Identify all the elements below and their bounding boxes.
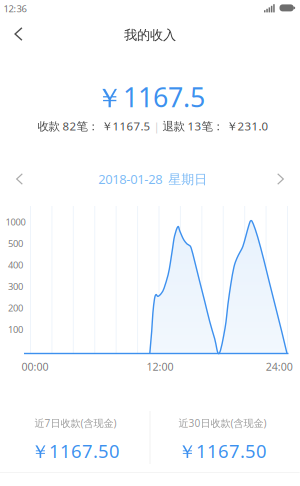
staticText: 200 [8, 302, 23, 314]
staticText: 收款 82笔： ￥1167.5 [38, 118, 151, 134]
staticText: 24:00 [266, 359, 293, 374]
staticText: 12:36 [3, 2, 26, 15]
staticText: 00:00 [21, 359, 48, 374]
staticText: 12:00 [146, 359, 173, 374]
staticText: 退款 13笔： ￥231.0 [163, 118, 269, 134]
button[interactable]: Back [0, 0, 37, 52]
staticText: ￥1167.5 [96, 79, 205, 115]
staticText: 100 [8, 323, 23, 336]
staticText: 2018-01-28 星期日 [98, 170, 207, 188]
staticText: 1000 [5, 216, 25, 228]
button[interactable]: Previous day [0, 0, 39, 194]
staticText: | [151, 118, 163, 134]
staticText: ￥1167.50 [31, 438, 120, 463]
button[interactable]: 近7日收款(含现金) [0, 0, 151, 477]
staticText: 近30日收款(含现金) [178, 416, 266, 430]
staticText: 400 [8, 259, 23, 271]
button[interactable]: Next day [0, 0, 300, 194]
button[interactable]: 2018-01-28 星期日 [98, 170, 207, 188]
staticText: 500 [8, 237, 23, 250]
button[interactable]: 近30日收款(含现金) [0, 0, 296, 477]
staticText: 近7日收款(含现金) [34, 416, 116, 430]
staticText: 300 [8, 280, 23, 293]
staticText: 我的收入 [124, 27, 176, 43]
staticText: ￥1167.50 [178, 438, 267, 463]
